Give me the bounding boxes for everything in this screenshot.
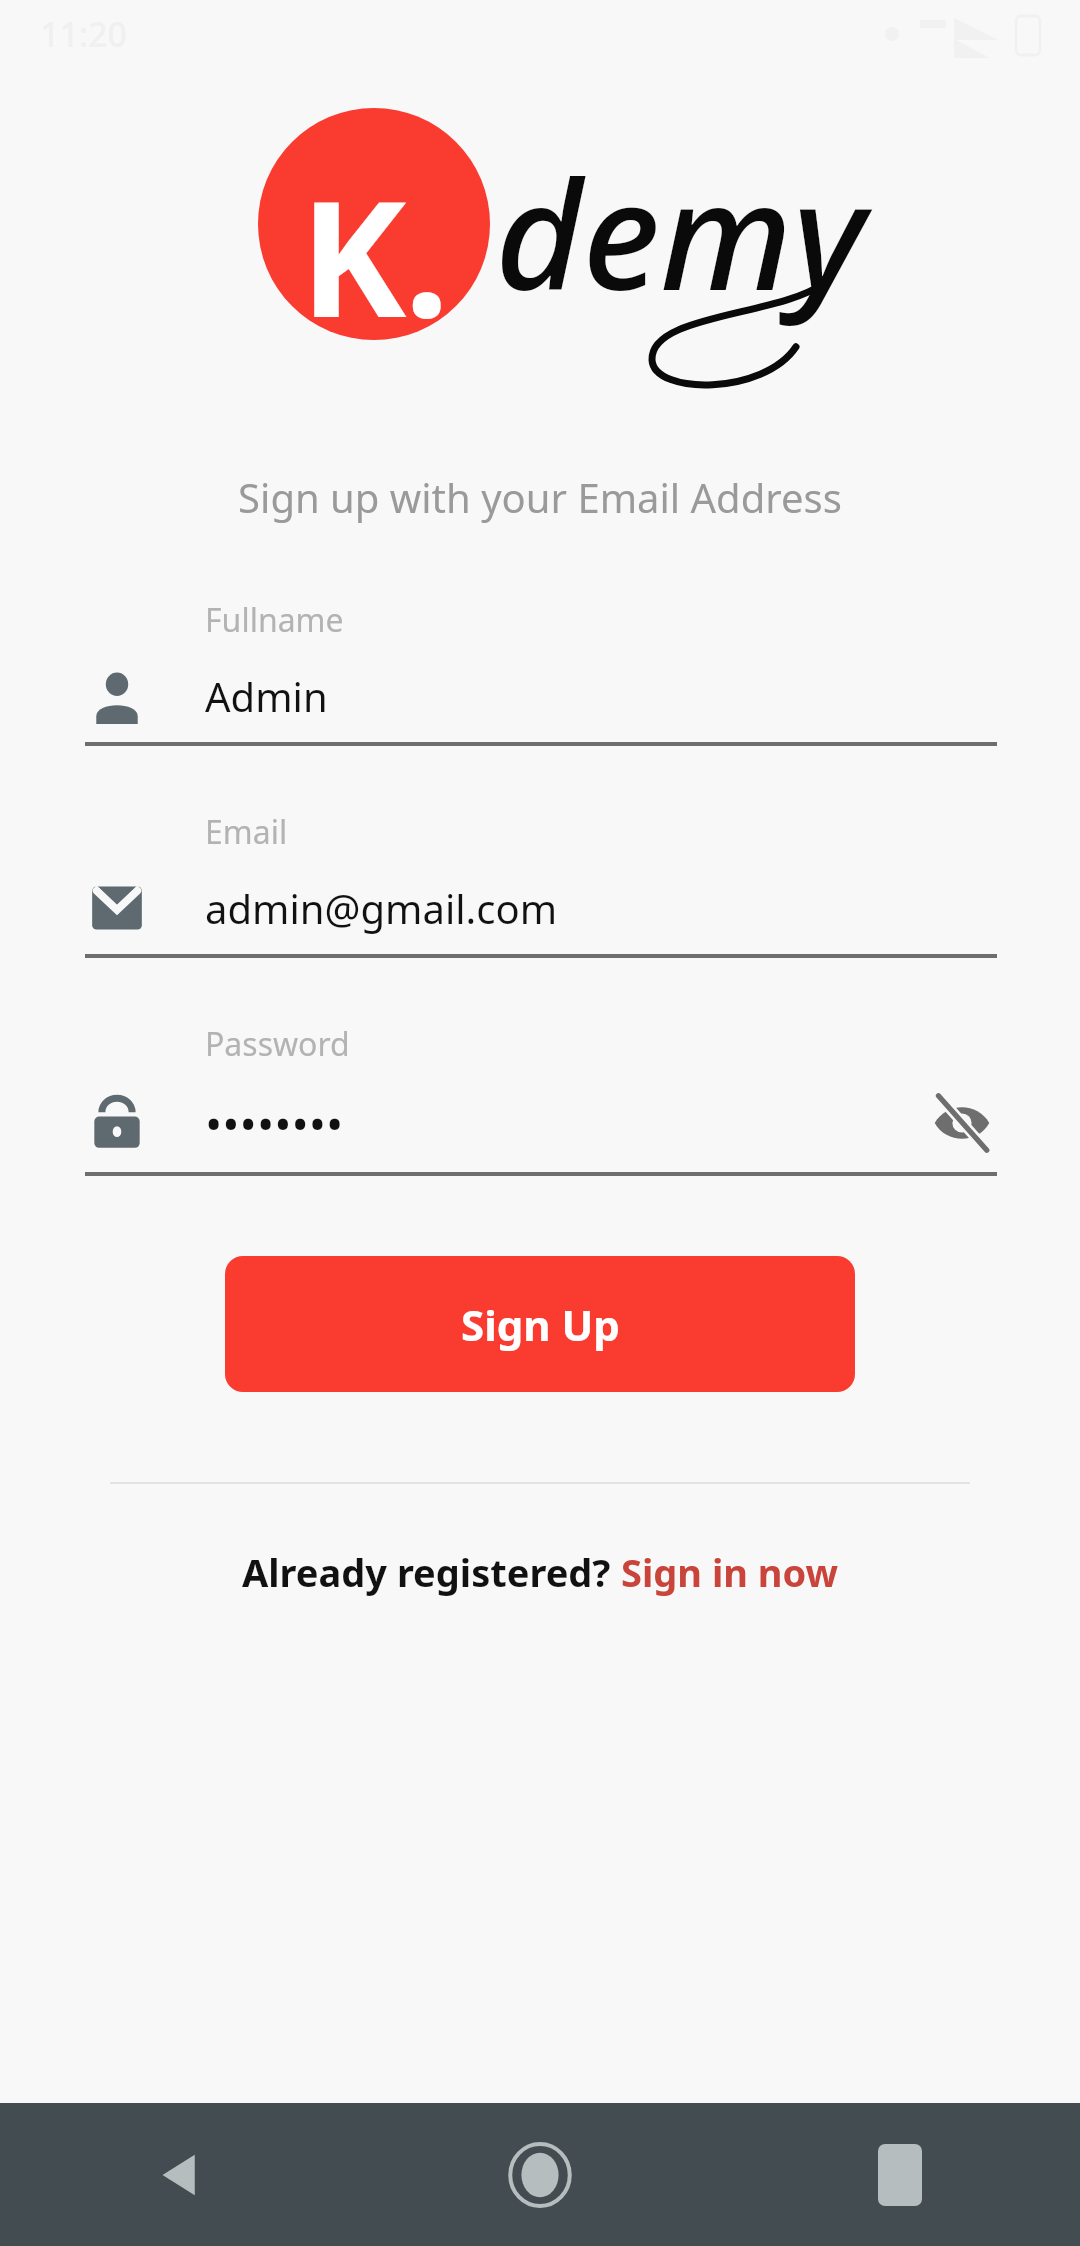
staticText: admin@gmail.com [205, 881, 997, 935]
button[interactable]: Toggle password visibility [927, 1088, 997, 1158]
button[interactable]: Email [85, 810, 997, 958]
staticText: Password [205, 1022, 350, 1066]
button[interactable]: Sign Up [225, 1256, 855, 1392]
staticText: demy [495, 130, 865, 334]
staticText: Email [205, 810, 288, 854]
button[interactable]: Sign in now [621, 1546, 839, 1598]
staticText: Already registered? [242, 1546, 621, 1598]
staticText: Sign up with your Email Address [0, 470, 1080, 524]
button[interactable]: Recent apps [720, 2103, 1080, 2246]
staticText: K. [300, 146, 448, 364]
button[interactable]: Back [0, 2103, 360, 2246]
staticText: Sign in now [621, 1546, 839, 1598]
button[interactable]: Password [85, 1022, 997, 1176]
staticText: Admin [205, 669, 997, 723]
staticText: •••••••• [205, 1092, 927, 1155]
staticText: Fullname [205, 598, 344, 642]
button[interactable]: Home [360, 2103, 720, 2246]
button[interactable]: Fullname [85, 598, 997, 746]
staticText: Sign Up [461, 1296, 620, 1353]
